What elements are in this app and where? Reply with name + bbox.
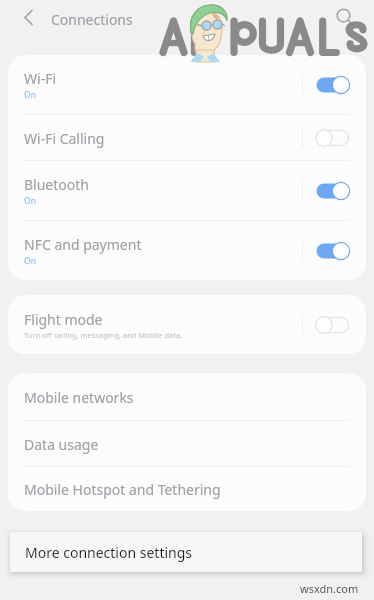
button[interactable]: Mobile Hotspot and Tethering	[8, 467, 366, 511]
staticText: On	[24, 255, 36, 267]
button[interactable]: Data usage	[8, 421, 366, 467]
staticText: Mobile Hotspot and Tethering	[24, 480, 221, 499]
staticText: On	[24, 89, 36, 101]
staticText: NFC and payment	[24, 235, 142, 254]
button[interactable]: More connection settings	[10, 532, 362, 572]
staticText: Wi-Fi Calling	[24, 129, 105, 148]
staticText: More connection settings	[25, 543, 193, 562]
button[interactable]: Bluetooth	[8, 161, 366, 221]
staticText: Turn off calling, messaging, and Mobile …	[24, 330, 183, 340]
staticText: On	[24, 195, 36, 207]
button[interactable]: Back	[17, 6, 40, 29]
button[interactable]: Flight mode	[8, 295, 366, 354]
staticText: Data usage	[24, 435, 99, 454]
staticText: Flight mode	[24, 310, 103, 329]
button[interactable]: Mobile networks	[8, 373, 366, 421]
staticText: wsxdn.com	[300, 581, 359, 596]
staticText: Connections	[51, 10, 133, 29]
staticText: Wi-Fi	[24, 69, 57, 88]
button[interactable]: Search	[332, 4, 355, 27]
button[interactable]: Wi-Fi	[8, 55, 366, 115]
button[interactable]: NFC and payment	[8, 221, 366, 280]
staticText: Mobile networks	[24, 388, 134, 407]
staticText: Bluetooth	[24, 175, 89, 194]
button[interactable]: Wi-Fi Calling	[8, 115, 366, 161]
